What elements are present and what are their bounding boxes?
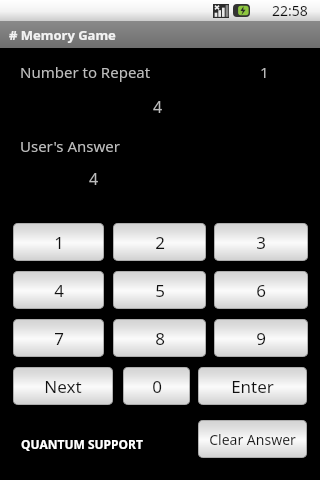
button[interactable]: Enter	[198, 367, 307, 405]
staticText: 9	[256, 327, 266, 350]
button[interactable]: 3	[214, 223, 308, 261]
staticText: User's Answer	[20, 136, 120, 156]
button[interactable]: 5	[113, 271, 206, 309]
button[interactable]: 6	[214, 271, 308, 309]
staticText: 8	[155, 327, 165, 350]
button[interactable]: 4	[13, 271, 104, 309]
button[interactable]: 8	[113, 319, 206, 357]
staticText: 7	[54, 327, 64, 350]
button[interactable]: Next	[13, 367, 113, 405]
staticText: 1	[260, 62, 269, 82]
staticText: QUANTUM SUPPORT	[21, 436, 143, 452]
staticText: 6	[256, 279, 266, 302]
staticText: Enter	[231, 375, 274, 398]
other: Battery charging	[233, 4, 250, 17]
staticText: 0	[152, 375, 162, 398]
staticText: 4	[89, 168, 99, 190]
staticText: 22:58	[272, 1, 308, 20]
button[interactable]: 9	[214, 319, 308, 357]
staticText: 5	[155, 279, 165, 302]
button[interactable]: Clear Answer	[198, 420, 307, 458]
staticText: 2	[155, 231, 165, 254]
other: Signal strength	[213, 4, 229, 18]
staticText: Next	[44, 375, 82, 398]
staticText: 4	[153, 96, 163, 118]
staticText: 4	[54, 279, 64, 302]
staticText: 3	[256, 231, 266, 254]
button[interactable]: 0	[123, 367, 190, 405]
staticText: Clear Answer	[209, 430, 296, 449]
staticText: 1	[54, 231, 64, 254]
button[interactable]: 2	[113, 223, 206, 261]
button[interactable]: 7	[13, 319, 104, 357]
staticText: Number to Repeat	[20, 62, 151, 82]
button[interactable]: 1	[13, 223, 104, 261]
staticText: # Memory Game	[9, 26, 116, 44]
